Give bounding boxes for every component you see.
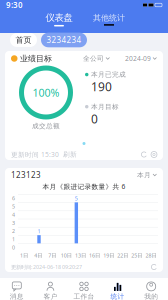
button[interactable]: 我的: [134, 278, 168, 300]
staticText: 业绩目标: [20, 54, 52, 63]
staticText: 19日: [103, 252, 114, 259]
button[interactable]: 客户: [34, 278, 67, 300]
staticText: 本月: [137, 171, 151, 179]
staticText: 3: [12, 219, 15, 226]
staticText: 0: [91, 111, 98, 127]
staticText: 5: [75, 195, 78, 202]
button[interactable]: 其他统计: [91, 13, 127, 26]
button[interactable]: 工作台: [67, 278, 101, 300]
button[interactable]: 刷新: [141, 151, 147, 157]
staticText: 全公司: [83, 54, 104, 63]
button[interactable]: 消息: [0, 278, 34, 300]
staticText: 统计: [111, 292, 125, 300]
button[interactable]: 设置: [151, 151, 157, 157]
staticText: 190: [91, 79, 112, 95]
staticText: 成交总额: [32, 122, 60, 130]
staticText: 更新时间: 2024-06-18 09:20:27: [11, 263, 82, 271]
staticText: 9:30: [6, 0, 23, 10]
staticText: 本月《跟进记录数量》共 6: [42, 182, 125, 191]
staticText: 28日: [145, 252, 156, 259]
staticText: 客户: [43, 292, 57, 300]
staticText: 6: [12, 195, 15, 202]
button[interactable]: 仪表盘: [41, 12, 77, 26]
staticText: 1: [37, 228, 40, 235]
staticText: 0: [12, 244, 15, 251]
staticText: 仪表盘: [45, 12, 72, 23]
staticText: 4: [12, 211, 15, 218]
staticText: 123123: [11, 170, 41, 180]
button[interactable]: 刷新: [151, 264, 157, 270]
staticText: 本月目标: [91, 103, 119, 111]
staticText: 首页: [15, 35, 31, 45]
staticText: 1日: [20, 252, 28, 259]
button[interactable]: 全公司: [83, 54, 110, 63]
button[interactable]: 统计: [101, 278, 134, 300]
staticText: 5: [12, 203, 15, 210]
staticText: 25日: [131, 252, 142, 259]
staticText: 更新时间 15:30: [11, 150, 59, 159]
staticText: 4日: [34, 252, 42, 259]
staticText: 刷新: [63, 150, 77, 159]
staticText: 我的: [144, 292, 158, 300]
staticText: 消息: [10, 292, 24, 300]
staticText: 其他统计: [93, 13, 125, 23]
staticText: 13日: [75, 252, 86, 259]
staticText: 本月已完成: [91, 70, 126, 79]
staticText: 1: [12, 236, 15, 243]
staticText: 7日: [48, 252, 56, 259]
staticText: 16日: [89, 252, 100, 259]
staticText: 2: [12, 227, 15, 235]
staticText: 100%: [32, 85, 59, 100]
staticText: 3234234: [46, 35, 81, 45]
staticText: 10日: [61, 252, 72, 259]
button[interactable]: 3234234: [41, 33, 87, 47]
button[interactable]: 首页: [10, 33, 37, 47]
staticText: 2024-09: [125, 54, 151, 63]
staticText: 22日: [117, 252, 128, 259]
button[interactable]: 本月: [137, 171, 157, 179]
staticText: 工作台: [73, 292, 94, 300]
button[interactable]: 2024-09: [125, 54, 157, 63]
